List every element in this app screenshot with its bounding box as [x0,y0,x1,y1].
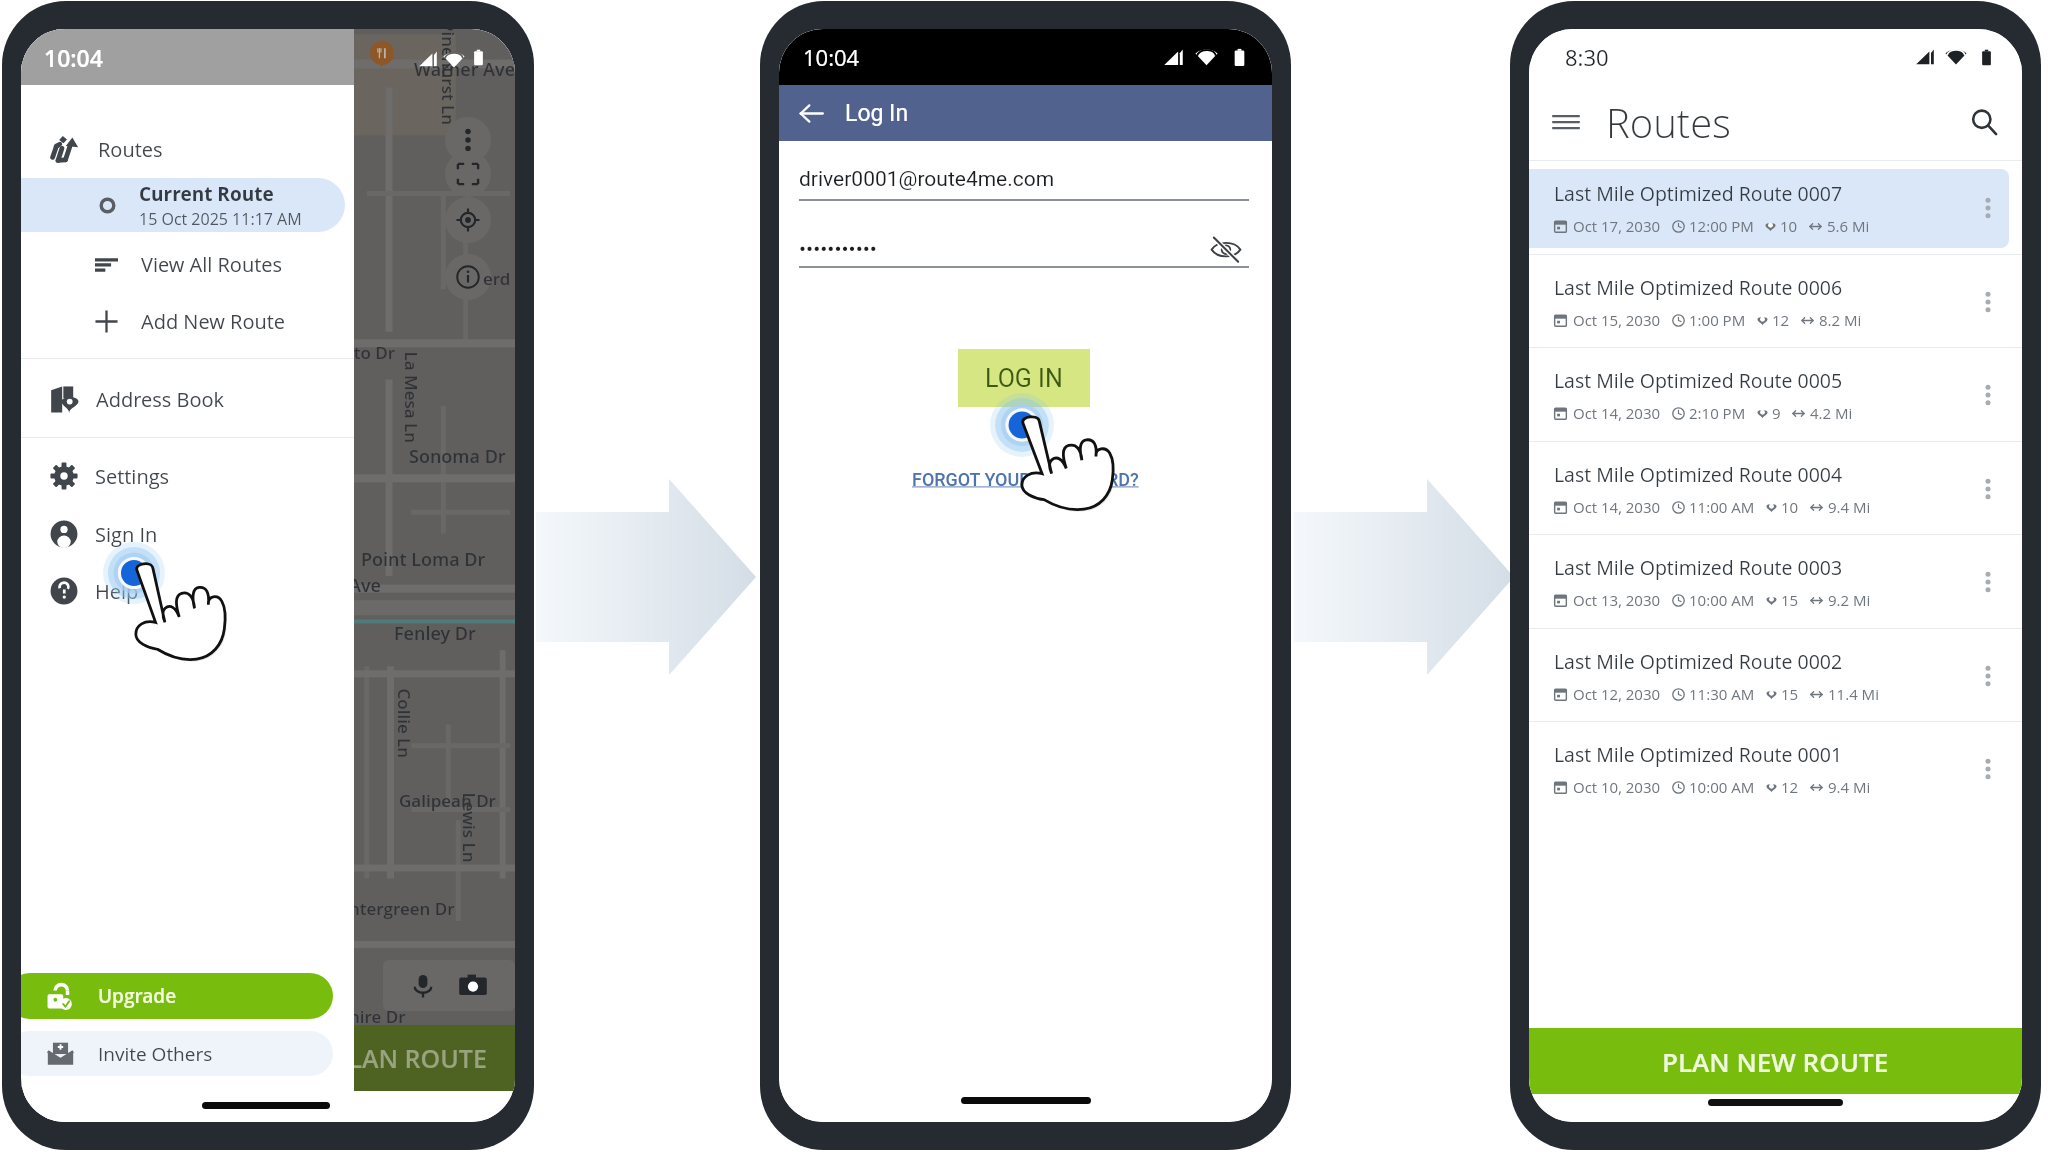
staticText: LOG IN [985,364,1063,393]
staticText: Last Mile Optimized Route 0005 [1554,367,1843,394]
staticText: 15 [1781,684,1799,704]
staticText: 1:00 PM [1689,310,1746,330]
button[interactable]: Current Route [21,178,345,232]
staticText: 4.2 Mi [1810,403,1853,423]
button[interactable]: More options [1962,650,2014,702]
button[interactable]: More options [1962,556,2014,608]
button[interactable]: Camera [449,962,497,1010]
staticText: 10:00 AM [1689,777,1755,797]
button[interactable]: More options [1962,743,2014,795]
button[interactable]: Settings [21,447,354,505]
button[interactable]: LOG IN [958,349,1090,407]
button[interactable]: Upgrade [21,973,333,1019]
button[interactable]: Invite Others [21,1031,333,1076]
staticText: Last Mile Optimized Route 0002 [1554,648,1843,675]
button[interactable]: Menu [1542,98,1590,146]
button[interactable]: Sign In [21,505,354,563]
button[interactable]: Fit route [445,151,491,197]
staticText: Oct 13, 2030 [1573,590,1661,610]
button[interactable]: Add New Route [21,292,354,350]
button[interactable]: Last Mile Optimized Route 0004 [1529,442,2022,535]
staticText: 11:30 AM [1689,684,1755,704]
staticText: hire Dr [349,1005,406,1028]
staticText: 9.4 Mi [1828,497,1871,517]
staticText: Lewis Ln [457,792,480,862]
button[interactable]: PLAN NEW ROUTE [1529,1028,2022,1094]
staticText: 15 Oct 2025 11:17 AM [139,208,302,230]
button[interactable]: Search [1960,98,2008,146]
staticText: Log In [845,100,909,127]
button[interactable]: FORGOT YOUR PASSWORD? [912,469,1139,490]
button[interactable]: More options [1962,182,2014,234]
staticText: Galipean Dr [399,789,496,812]
staticText: Oct 17, 2030 [1573,216,1661,236]
staticText: La Mesa Ln [399,351,422,443]
staticText: Sonoma Dr [409,444,506,469]
staticText: 10 [1781,497,1799,517]
staticText: Invite Others [98,1041,213,1067]
staticText: 8:30 [1565,42,1609,72]
staticText: Point Loma Dr [361,547,486,572]
staticText: Fenley Dr [394,621,476,646]
staticText: ••••••••••• [799,237,877,262]
staticText: 12 [1781,777,1799,797]
staticText: Help [95,578,139,605]
staticText: 9.2 Mi [1828,590,1871,610]
button[interactable]: Routes [21,120,354,178]
staticText: Oct 14, 2030 [1573,403,1661,423]
staticText: 2:10 PM [1689,403,1746,423]
staticText: driver0001@route4me.com [799,167,1055,192]
staticText: Address Book [96,386,225,413]
staticText: 12 [1772,310,1790,330]
staticText: 10:04 [44,42,103,73]
staticText: Sign In [95,521,158,548]
button[interactable]: Help [21,562,354,620]
staticText: Oct 14, 2030 [1573,497,1661,517]
button[interactable]: Show password [1210,233,1242,265]
button[interactable]: Map info [445,254,491,300]
button[interactable]: More options [1962,463,2014,515]
staticText: lto Dr [349,341,396,364]
staticText: Add New Route [141,308,286,335]
staticText: Oct 12, 2030 [1573,684,1661,704]
staticText: ntergreen Dr [349,897,455,920]
staticText: 15 [1781,590,1799,610]
staticText: Pinehurst Ln [437,29,460,126]
staticText: Oct 10, 2030 [1573,777,1661,797]
staticText: Current Route [139,181,274,207]
staticText: Warner Ave [414,57,515,82]
button[interactable]: My location [445,197,491,243]
staticText: Last Mile Optimized Route 0004 [1554,461,1843,488]
button[interactable]: Last Mile Optimized Route 0003 [1529,535,2022,628]
button[interactable]: Last Mile Optimized Route 0006 [1529,255,2022,348]
button[interactable]: More options [445,117,491,163]
staticText: Settings [95,463,170,490]
button[interactable]: View All Routes [21,235,354,293]
button[interactable]: Voice search [399,962,447,1010]
staticText: PLAN ROUTE [333,1041,487,1075]
staticText: PLAN NEW ROUTE [1662,1044,1889,1079]
button[interactable]: Last Mile Optimized Route 0007 [1529,161,2022,254]
button[interactable]: Last Mile Optimized Route 0001 [1529,722,2022,815]
staticText: Last Mile Optimized Route 0006 [1554,274,1843,301]
button[interactable]: Address Book [21,370,354,428]
button[interactable]: Back [789,91,833,135]
staticText: Ave [349,573,381,598]
staticText: 10 [1780,216,1798,236]
staticText: Last Mile Optimized Route 0003 [1554,554,1843,581]
button[interactable]: More options [1962,369,2014,421]
button[interactable]: Last Mile Optimized Route 0002 [1529,629,2022,722]
staticText: Upgrade [98,983,177,1009]
staticText: Collie Ln [392,688,415,758]
staticText: 9 [1772,403,1781,423]
staticText: Last Mile Optimized Route 0007 [1554,180,1843,207]
button[interactable]: Last Mile Optimized Route 0005 [1529,348,2022,441]
staticText: Routes [98,136,163,163]
staticText: 10:04 [803,42,860,72]
staticText: 9.4 Mi [1828,777,1871,797]
staticText: 10:00 AM [1689,590,1755,610]
staticText: Routes [1606,95,1731,149]
button[interactable]: More options [1962,276,2014,328]
staticText: erd [483,267,511,290]
staticText: Last Mile Optimized Route 0001 [1554,741,1843,768]
